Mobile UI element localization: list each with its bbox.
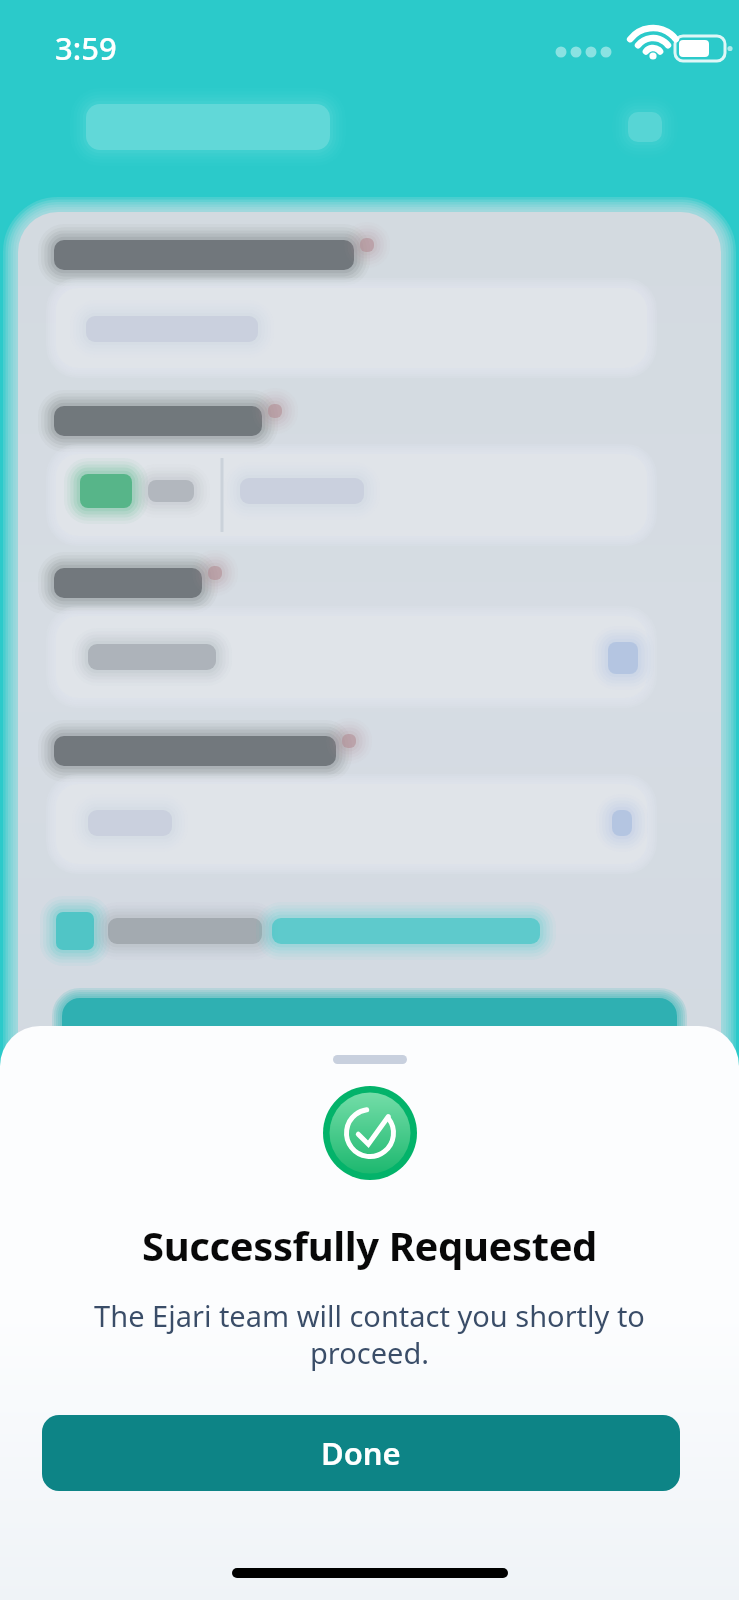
staticText: The Ejari team will contact you shortly … xyxy=(82,1296,657,1373)
staticText: Successfully Requested xyxy=(142,1218,597,1272)
staticText: Done xyxy=(321,1432,401,1474)
staticText: 3:59 xyxy=(55,27,117,69)
button[interactable]: Done xyxy=(42,1415,680,1491)
other: Success xyxy=(323,1086,417,1180)
